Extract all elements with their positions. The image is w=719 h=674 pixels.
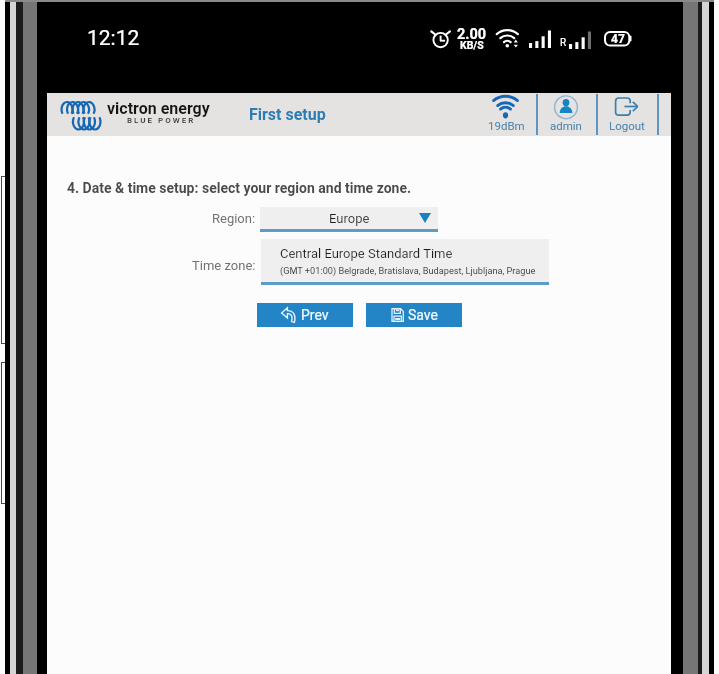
staticText: BLUE POWER bbox=[127, 116, 196, 125]
button[interactable]: Prev bbox=[257, 303, 353, 327]
staticText: Logout bbox=[609, 119, 645, 132]
staticText: 12:12 bbox=[87, 26, 140, 51]
staticText: 2.00 bbox=[457, 26, 487, 43]
staticText: KB/S bbox=[460, 39, 484, 51]
staticText: Region: bbox=[212, 211, 256, 226]
button[interactable]: Europe bbox=[260, 207, 438, 229]
staticText: Europe bbox=[329, 211, 370, 226]
staticText: Time zone: bbox=[192, 258, 256, 273]
button[interactable]: Save bbox=[366, 303, 462, 327]
button[interactable]: Logout bbox=[598, 93, 656, 136]
button[interactable]: User account bbox=[538, 93, 594, 136]
staticText: Save bbox=[408, 307, 438, 323]
staticText: admin bbox=[550, 119, 582, 132]
staticText: 47 bbox=[611, 32, 625, 46]
button[interactable]: Central Europe Standard Time bbox=[261, 239, 549, 282]
staticText: First setup bbox=[249, 105, 326, 124]
staticText: (GMT +01:00) Belgrade, Bratislava, Budap… bbox=[280, 265, 536, 276]
staticText: Central Europe Standard Time bbox=[280, 246, 453, 261]
staticText: R bbox=[560, 37, 567, 49]
staticText: 19dBm bbox=[488, 119, 525, 132]
staticText: Prev bbox=[301, 307, 329, 323]
staticText: 4. Date & time setup: select your region… bbox=[67, 180, 412, 196]
staticText: victron energy bbox=[107, 99, 210, 118]
button[interactable]: Signal strength bbox=[480, 93, 532, 136]
